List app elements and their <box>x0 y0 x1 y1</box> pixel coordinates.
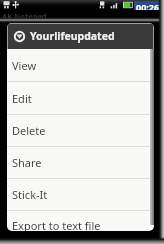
other: Collapse menu <box>13 30 26 43</box>
staticText: Share <box>12 155 42 170</box>
button[interactable]: Collapse menu <box>7 23 154 49</box>
button[interactable]: View <box>7 49 154 81</box>
staticText: Stick-It <box>12 187 48 202</box>
staticText: AK Notepad <box>2 11 47 21</box>
staticText: Edit <box>12 91 32 106</box>
staticText: Export to text file <box>12 218 101 231</box>
staticText: 00:26 <box>136 1 160 10</box>
staticText: View <box>12 58 37 73</box>
button[interactable]: Export to text file <box>7 211 154 231</box>
button[interactable]: Stick-It <box>7 179 154 210</box>
button[interactable]: Delete <box>7 115 154 146</box>
staticText: Delete <box>12 123 46 138</box>
button[interactable]: Edit <box>7 82 154 114</box>
button[interactable]: Share <box>7 147 154 178</box>
staticText: Yourlifeupdated <box>30 29 115 43</box>
